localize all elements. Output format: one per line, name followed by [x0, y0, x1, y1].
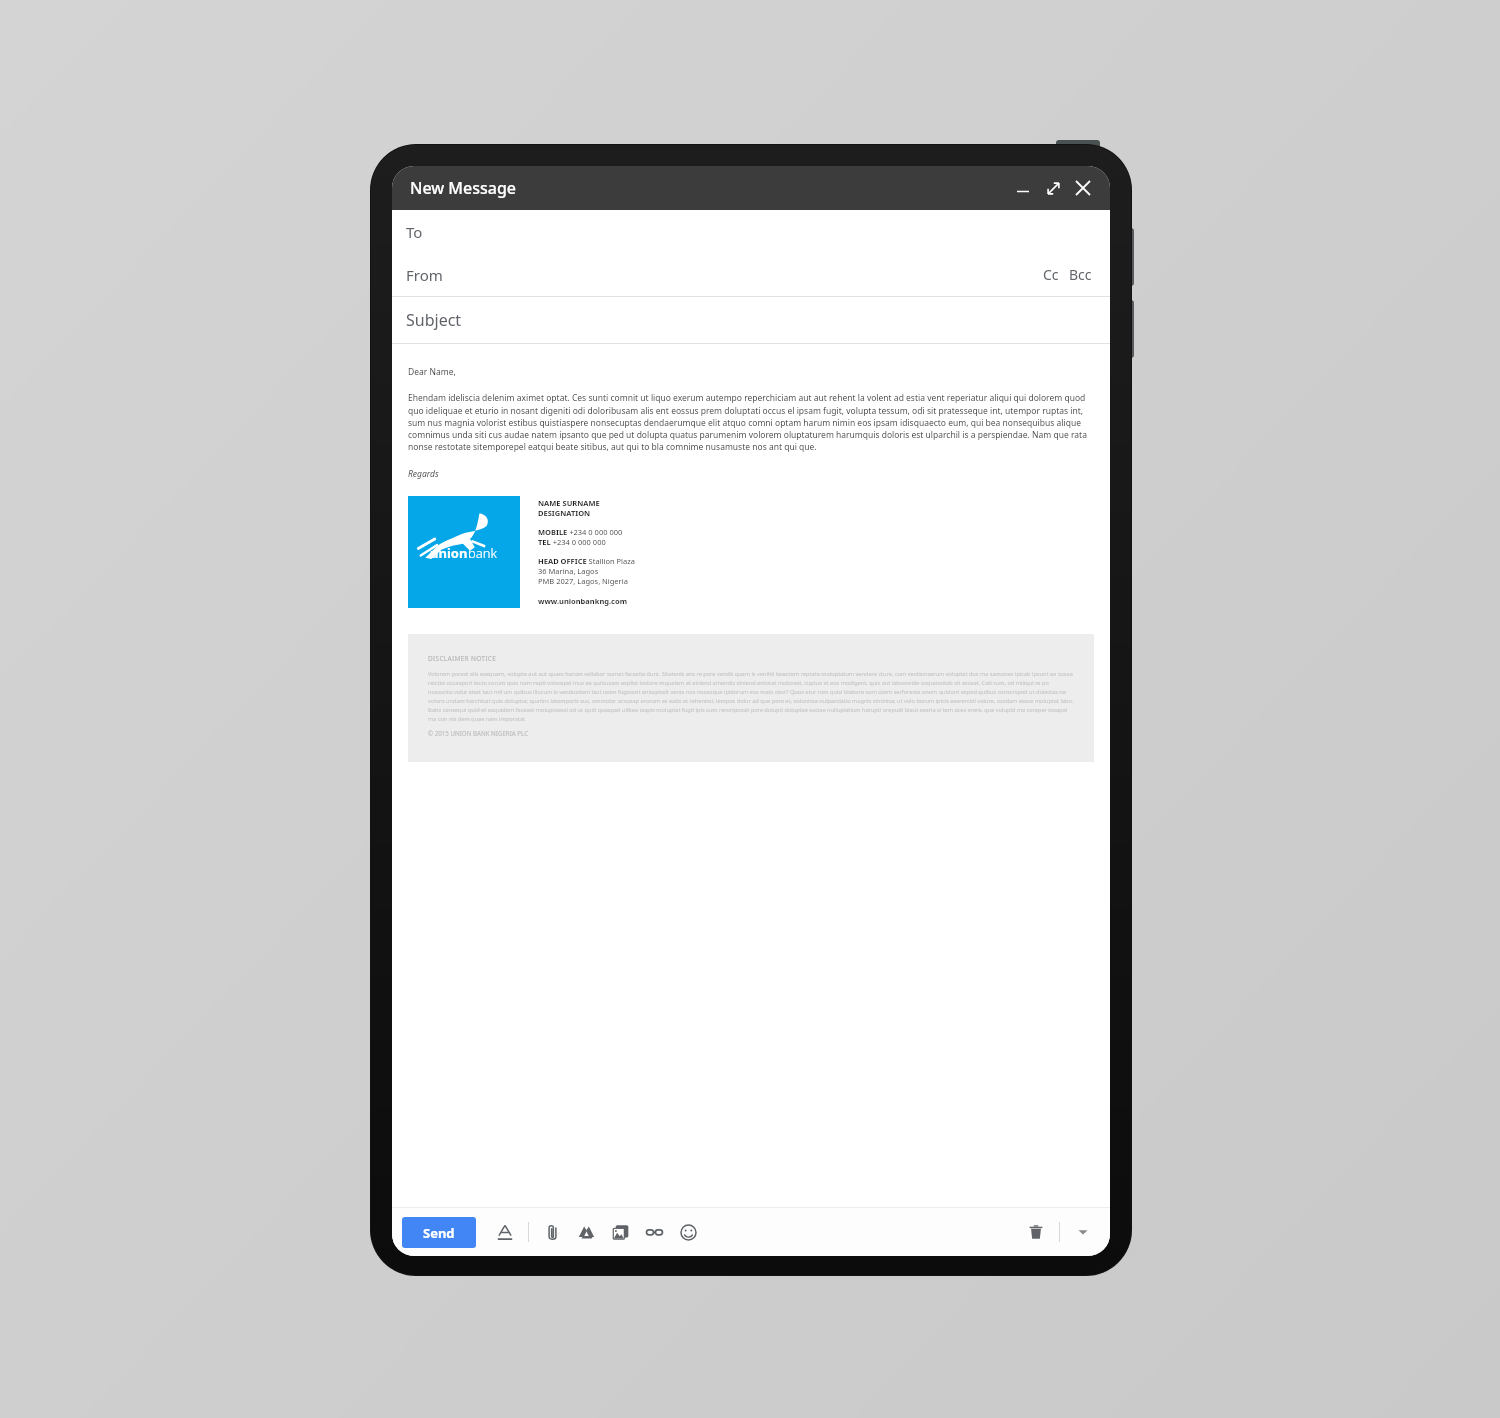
staticText: From [406, 265, 443, 285]
staticText: bank [468, 544, 497, 562]
button[interactable]: Full screen [1038, 173, 1068, 203]
button[interactable]: From [392, 253, 1037, 296]
staticText: Send [423, 1224, 455, 1242]
staticText: Dear Name, [408, 366, 456, 378]
staticText: PMB 2027, Lagos, Nigeria [538, 576, 628, 586]
button[interactable]: Insert emoji [671, 1215, 705, 1249]
staticText: Cc [1043, 265, 1059, 284]
button[interactable]: Formatting options [488, 1215, 522, 1249]
button[interactable]: Minimize [1008, 173, 1038, 203]
button[interactable]: Discard draft [1019, 1215, 1053, 1249]
staticText: DISCLAIMER NOTICE [428, 654, 497, 663]
staticText: Volorem porest alis esequam, volupta aut… [428, 670, 1074, 722]
button[interactable]: More options [1066, 1215, 1100, 1249]
staticText: New Message [410, 177, 517, 199]
staticText: To [406, 222, 423, 242]
button[interactable]: Bcc [1065, 253, 1096, 296]
staticText: union [430, 544, 468, 562]
staticText: Ehendam ideliscia delenim aximet optat. … [408, 392, 1094, 452]
staticText: Regards [408, 468, 439, 480]
button[interactable]: To [392, 210, 1110, 253]
button[interactable]: Insert photo [603, 1215, 637, 1249]
button[interactable]: Close [1068, 173, 1098, 203]
button[interactable]: www.unionbankng.com [538, 596, 627, 606]
staticText: © 2015 UNION BANK NIGERIA PLC [428, 729, 529, 737]
staticText: Subject [406, 309, 462, 331]
staticText: NAME SURNAME [538, 498, 600, 508]
staticText: HEAD OFFICE Stallion Plaza [538, 556, 635, 566]
staticText: DESIGNATION [538, 508, 591, 518]
button[interactable]: Cc [1037, 253, 1065, 296]
staticText: MOBILE +234 0 000 000 [538, 527, 623, 537]
button[interactable]: Send [402, 1217, 476, 1248]
button[interactable]: Subject [392, 297, 1110, 343]
staticText: Bcc [1069, 265, 1092, 284]
button[interactable]: Attach file [535, 1215, 569, 1249]
staticText: 36 Marina, Lagos [538, 566, 599, 576]
staticText: TEL +234 0 000 000 [538, 537, 606, 547]
button[interactable]: Insert link [637, 1215, 671, 1249]
button[interactable]: Insert from Drive [569, 1215, 603, 1249]
